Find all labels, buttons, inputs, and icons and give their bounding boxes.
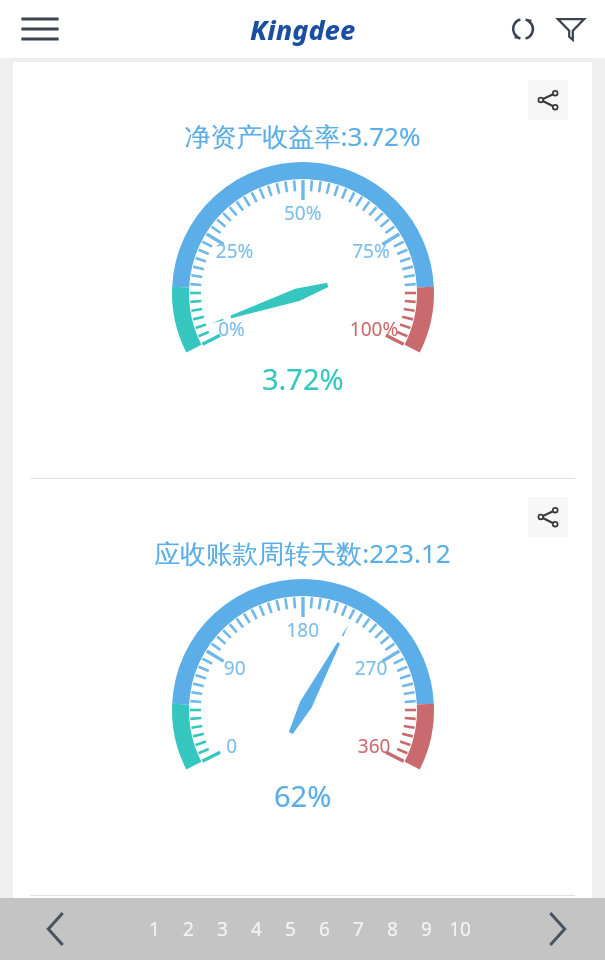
button[interactable]: 3 [209,909,235,949]
button[interactable]: Menu [16,5,64,53]
staticText: 1 [149,916,160,942]
button[interactable]: 1 [141,909,167,949]
button[interactable]: 7 [345,909,371,949]
staticText: Kingdee [250,11,356,48]
button[interactable]: Share [528,497,568,537]
button[interactable]: 10 [447,909,473,949]
staticText: 7 [353,916,364,942]
staticText: 应收账款周转天数:223.12 [154,535,451,571]
staticText: 净资产收益率:3.72% [184,118,421,154]
staticText: 8 [387,916,398,942]
staticText: 9 [421,916,432,942]
button[interactable]: Filter [547,5,595,53]
button[interactable]: 6 [311,909,337,949]
button[interactable]: Refresh [499,5,547,53]
button[interactable]: Kingdee [250,11,356,48]
staticText: 2 [183,916,194,942]
button[interactable]: 净资产收益率:3.72% [184,118,421,154]
button[interactable]: 应收账款周转天数:223.12 [154,535,451,571]
button[interactable]: 4 [243,909,269,949]
button[interactable]: 8 [379,909,405,949]
staticText: 10 [449,916,471,942]
button[interactable]: Next page [537,909,577,949]
button[interactable]: Previous page [36,909,76,949]
staticText: 5 [285,916,296,942]
button[interactable]: 5 [277,909,303,949]
staticText: 4 [251,916,262,942]
button[interactable]: Share [528,80,568,120]
button[interactable]: 9 [413,909,439,949]
staticText: 6 [319,916,330,942]
button[interactable]: 2 [175,909,201,949]
staticText: 3 [217,916,228,942]
